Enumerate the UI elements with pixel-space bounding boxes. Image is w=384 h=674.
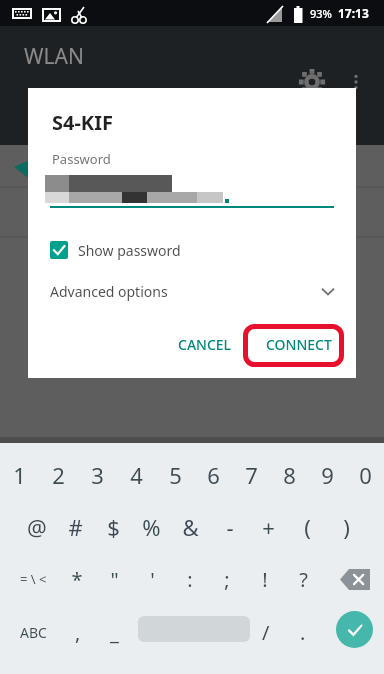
staticText: 2 (52, 460, 65, 490)
staticText: Password (52, 150, 111, 168)
staticText: Show password (78, 241, 181, 260)
staticText: ! (262, 566, 268, 593)
button[interactable]: Show password (50, 235, 181, 265)
button[interactable]: - (210, 501, 249, 553)
button[interactable]: More options (340, 66, 372, 98)
staticText: ) (343, 512, 350, 542)
button[interactable]: Advanced options (28, 277, 356, 305)
staticText: 3 (91, 460, 104, 490)
button[interactable]: Enter (336, 611, 373, 648)
button[interactable]: . (287, 605, 319, 659)
staticText: , (75, 619, 81, 646)
staticText: Advanced options (50, 282, 168, 301)
button[interactable]: # (56, 501, 94, 553)
button[interactable]: ; (211, 553, 243, 605)
staticText: & (182, 512, 199, 542)
button[interactable]: 4 (117, 449, 156, 501)
staticText: - (226, 512, 234, 542)
staticText: + (262, 512, 275, 542)
button[interactable]: " (98, 553, 130, 605)
button[interactable]: _ (98, 605, 130, 659)
staticText: 4 (130, 460, 143, 490)
staticText: _ (110, 619, 119, 646)
staticText: 7 (245, 460, 258, 490)
staticText: $ (107, 512, 120, 542)
button[interactable]: ' (136, 553, 168, 605)
staticText: @ (27, 512, 47, 542)
staticText: : (187, 566, 193, 593)
button[interactable]: = \ < (6, 553, 60, 605)
button[interactable]: 1 (0, 449, 39, 501)
button[interactable]: 3 (78, 449, 117, 501)
button[interactable]: / (250, 605, 282, 659)
button[interactable]: 0 (346, 449, 384, 501)
staticText: % (142, 512, 161, 542)
button[interactable]: 6 (194, 449, 232, 501)
button[interactable]: 2 (39, 449, 78, 501)
staticText: . (300, 619, 306, 646)
button[interactable]: * (61, 553, 93, 605)
staticText: ; (224, 566, 230, 593)
button[interactable]: $ (94, 501, 132, 553)
staticText: ( (304, 512, 311, 542)
staticText: 0 (359, 460, 372, 490)
staticText: ' (150, 566, 155, 593)
staticText: S4-KIF (52, 109, 113, 136)
staticText: CANCEL (178, 335, 232, 354)
button[interactable]: & (171, 501, 210, 553)
button[interactable]: 9 (308, 449, 346, 501)
staticText: " (110, 566, 119, 593)
button[interactable]: % (132, 501, 171, 553)
button[interactable]: Backspace (334, 553, 376, 605)
button[interactable]: CONNECT (256, 327, 342, 362)
button[interactable]: : (174, 553, 206, 605)
button[interactable]: ABC (6, 605, 60, 659)
staticText: 1 (13, 460, 26, 490)
button[interactable]: 5 (156, 449, 194, 501)
button[interactable]: ( (288, 501, 327, 553)
staticText: CONNECT (266, 335, 332, 354)
staticText: * (71, 566, 83, 593)
staticText: 6 (207, 460, 220, 490)
button[interactable]: CANCEL (168, 327, 242, 362)
button[interactable]: ? (287, 553, 319, 605)
button[interactable]: ! (249, 553, 281, 605)
button[interactable]: 8 (270, 449, 308, 501)
staticText: WLAN (24, 42, 84, 71)
staticText: ABC (20, 623, 47, 642)
staticText: 5 (169, 460, 182, 490)
button[interactable]: , (62, 605, 94, 659)
button[interactable]: + (249, 501, 288, 553)
button[interactable]: 7 (232, 449, 270, 501)
staticText: = \ < (20, 570, 47, 588)
staticText: 9 (321, 460, 334, 490)
staticText: / (262, 619, 270, 646)
staticText: ? (299, 566, 308, 593)
button[interactable]: @ (18, 501, 56, 553)
staticText: # (68, 512, 83, 542)
staticText: 93% (310, 6, 332, 21)
staticText: 8 (283, 460, 296, 490)
button[interactable]: Settings (296, 66, 328, 98)
staticText: 17:13 (338, 5, 369, 21)
button[interactable]: ) (327, 501, 366, 553)
